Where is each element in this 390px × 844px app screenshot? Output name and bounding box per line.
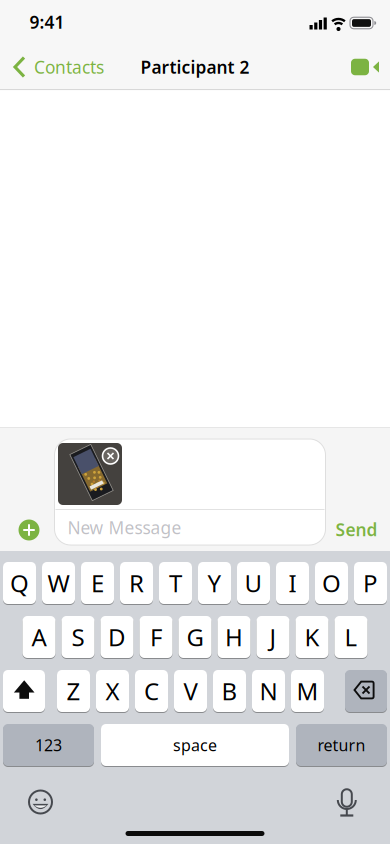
button[interactable]: Attach bbox=[18, 519, 39, 540]
staticText: R bbox=[129, 567, 144, 599]
staticText: return bbox=[317, 734, 365, 756]
button[interactable]: P bbox=[354, 562, 387, 604]
button[interactable]: Delete bbox=[345, 670, 387, 712]
staticText: V bbox=[183, 675, 197, 707]
staticText: T bbox=[169, 567, 182, 599]
button[interactable]: Dictate bbox=[333, 786, 361, 819]
staticText: Z bbox=[66, 675, 80, 707]
button[interactable]: T bbox=[159, 562, 192, 604]
staticText: M bbox=[296, 675, 318, 707]
staticText: K bbox=[304, 621, 319, 653]
staticText: U bbox=[244, 567, 262, 599]
button[interactable]: Remove attachment bbox=[102, 448, 118, 464]
button[interactable]: Video Call bbox=[351, 57, 381, 77]
button[interactable]: H bbox=[217, 616, 250, 658]
staticText: Y bbox=[207, 567, 221, 599]
staticText: D bbox=[108, 621, 126, 653]
staticText: I bbox=[288, 567, 296, 599]
button[interactable]: return bbox=[296, 724, 387, 766]
button[interactable]: J bbox=[256, 616, 289, 658]
staticText: Send bbox=[335, 518, 377, 541]
staticText: 123 bbox=[35, 734, 62, 756]
staticText: A bbox=[31, 621, 46, 653]
staticText: Q bbox=[10, 567, 29, 599]
button[interactable]: X bbox=[96, 670, 129, 712]
staticText: Participant 2 bbox=[140, 55, 249, 78]
button[interactable]: Q bbox=[3, 562, 36, 604]
button[interactable]: Emoji bbox=[29, 790, 52, 813]
staticText: H bbox=[225, 621, 243, 653]
button[interactable]: R bbox=[120, 562, 153, 604]
staticText: X bbox=[105, 675, 119, 707]
button[interactable]: S bbox=[61, 616, 94, 658]
staticText: B bbox=[221, 675, 237, 707]
staticText: F bbox=[150, 621, 162, 653]
button[interactable]: I bbox=[276, 562, 309, 604]
staticText: New Message bbox=[67, 516, 181, 539]
staticText: W bbox=[47, 567, 69, 599]
staticText: C bbox=[144, 675, 159, 707]
button[interactable]: G bbox=[178, 616, 211, 658]
button[interactable]: O bbox=[315, 562, 348, 604]
button[interactable]: F bbox=[139, 616, 172, 658]
staticText: E bbox=[91, 567, 104, 599]
button[interactable]: N bbox=[252, 670, 285, 712]
button[interactable]: B bbox=[213, 670, 246, 712]
button[interactable]: D bbox=[100, 616, 133, 658]
button[interactable]: space bbox=[101, 724, 289, 766]
button[interactable]: 123 bbox=[3, 724, 94, 766]
button[interactable]: U bbox=[237, 562, 270, 604]
staticText: space bbox=[173, 734, 217, 756]
button[interactable]: L bbox=[334, 616, 367, 658]
button[interactable]: Shift bbox=[3, 670, 45, 712]
staticText: L bbox=[344, 621, 357, 653]
button[interactable]: Y bbox=[198, 562, 231, 604]
staticText: J bbox=[269, 621, 276, 653]
staticText: P bbox=[363, 567, 378, 599]
staticText: G bbox=[186, 621, 203, 653]
staticText: Contacts bbox=[34, 55, 104, 78]
staticText: S bbox=[71, 621, 84, 653]
staticText: O bbox=[322, 567, 341, 599]
staticText: 9:41 bbox=[29, 10, 64, 33]
button[interactable]: V bbox=[174, 670, 207, 712]
button[interactable]: New Message bbox=[55, 510, 324, 544]
button[interactable]: Contacts bbox=[12, 44, 104, 90]
button[interactable]: K bbox=[295, 616, 328, 658]
button[interactable]: Z bbox=[57, 670, 90, 712]
button[interactable]: W bbox=[42, 562, 75, 604]
button[interactable]: M bbox=[291, 670, 324, 712]
button[interactable]: Send bbox=[335, 518, 377, 541]
button[interactable]: E bbox=[81, 562, 114, 604]
staticText: N bbox=[259, 675, 277, 707]
button[interactable]: A bbox=[22, 616, 55, 658]
button[interactable]: C bbox=[135, 670, 168, 712]
